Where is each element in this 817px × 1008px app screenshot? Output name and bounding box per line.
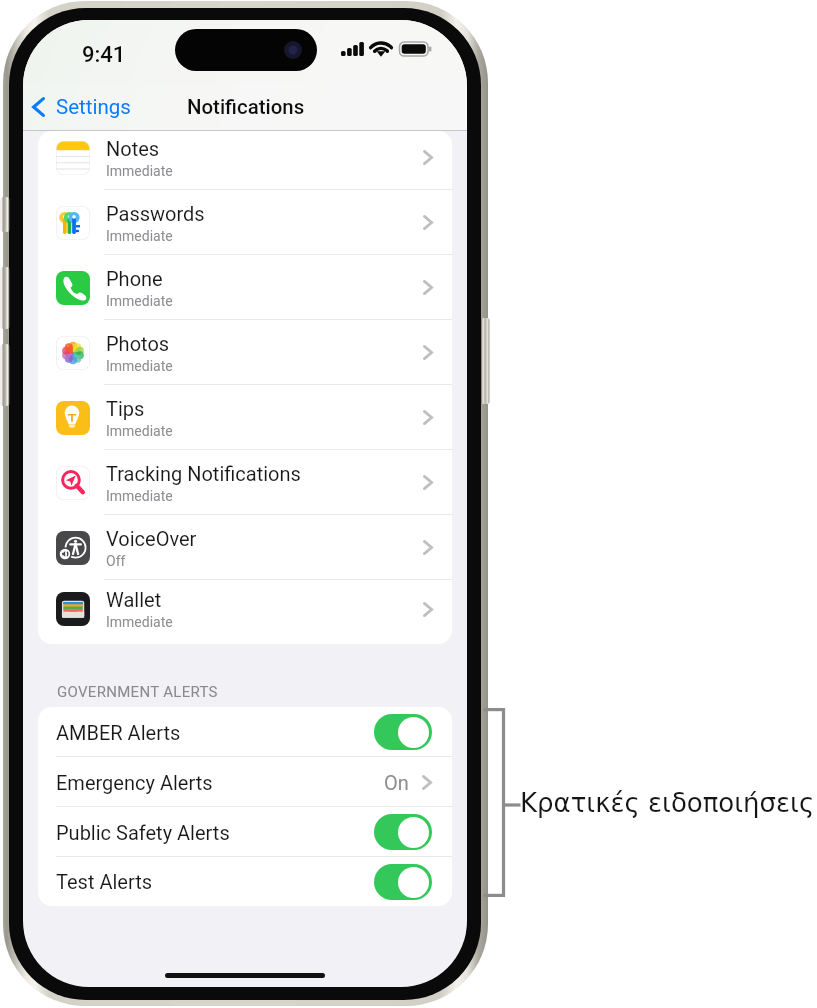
button[interactable]: Photos: [38, 320, 452, 385]
staticText: Emergency Alerts: [56, 771, 384, 794]
staticText: Passwords: [106, 202, 205, 225]
button[interactable]: Phone: [38, 255, 452, 320]
other: Toggle Public Safety Alerts: [374, 814, 432, 850]
staticText: Notifications: [187, 95, 305, 119]
staticText: Immediate: [106, 293, 173, 309]
staticText: GOVERNMENT ALERTS: [57, 683, 218, 701]
staticText: Immediate: [106, 228, 173, 244]
staticText: Off: [106, 553, 126, 569]
button[interactable]: Settings: [26, 90, 137, 124]
button[interactable]: Test Alerts: [38, 857, 452, 906]
button[interactable]: Public Safety Alerts: [38, 807, 452, 857]
staticText: Notes: [106, 137, 160, 160]
staticText: VoiceOver: [106, 527, 197, 550]
other: Toggle AMBER Alerts: [374, 714, 432, 750]
button[interactable]: Tracking Notifications: [38, 450, 452, 515]
staticText: 9:41: [82, 42, 126, 68]
staticText: Immediate: [106, 423, 173, 439]
button[interactable]: VoiceOver: [38, 515, 452, 580]
staticText: Public Safety Alerts: [56, 821, 374, 844]
staticText: Κρατικές ειδοποιήσεις: [520, 788, 815, 818]
button[interactable]: Wallet: [38, 580, 452, 638]
staticText: AMBER Alerts: [56, 721, 374, 744]
staticText: Immediate: [106, 614, 173, 630]
button[interactable]: Tips: [38, 385, 452, 450]
staticText: Immediate: [106, 358, 173, 374]
staticText: Immediate: [106, 488, 173, 504]
staticText: Test Alerts: [56, 870, 374, 893]
staticText: Settings: [56, 95, 131, 119]
button[interactable]: Emergency Alerts: [38, 757, 452, 807]
button[interactable]: AMBER Alerts: [38, 707, 452, 757]
other: Toggle Test Alerts: [374, 864, 432, 900]
staticText: Immediate: [106, 163, 173, 179]
staticText: Tips: [106, 397, 145, 420]
staticText: Phone: [106, 267, 163, 290]
staticText: On: [384, 771, 409, 794]
staticText: Tracking Notifications: [106, 462, 301, 485]
button[interactable]: Passwords: [38, 190, 452, 255]
button[interactable]: Notes: [38, 131, 452, 190]
staticText: Photos: [106, 332, 170, 355]
staticText: Wallet: [106, 588, 162, 611]
